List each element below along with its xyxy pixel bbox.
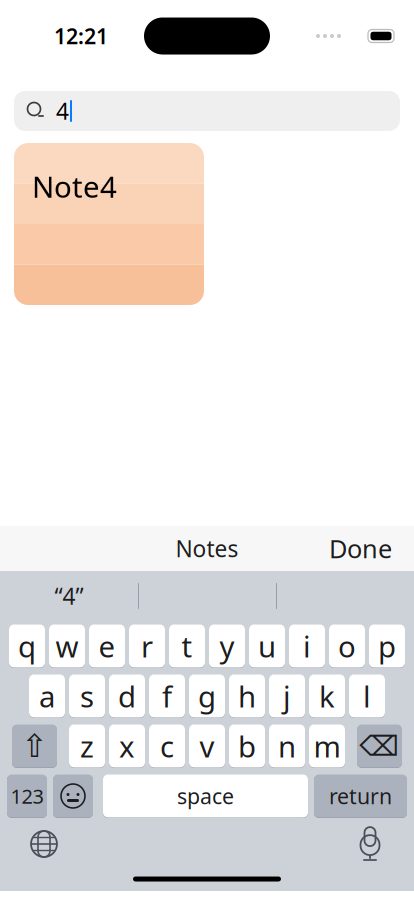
staticText: “4” — [54, 581, 83, 611]
button[interactable]: k — [309, 674, 345, 718]
staticText: q — [18, 626, 36, 665]
staticText: m — [313, 726, 340, 765]
staticText: space — [177, 782, 234, 810]
staticText: i — [303, 626, 311, 665]
button[interactable]: u — [249, 624, 285, 668]
staticText: p — [378, 626, 396, 665]
button[interactable]: w — [49, 624, 85, 668]
button[interactable]: Return — [314, 774, 407, 818]
button[interactable]: y — [209, 624, 245, 668]
staticText: l — [363, 676, 371, 715]
button[interactable]: a — [29, 674, 65, 718]
button[interactable]: g — [189, 674, 225, 718]
button[interactable]: Delete — [357, 724, 402, 768]
staticText: f — [162, 676, 172, 715]
button[interactable]: f — [149, 674, 185, 718]
button[interactable]: s — [69, 674, 105, 718]
button[interactable]: Done — [315, 524, 406, 573]
staticText: return — [329, 782, 392, 810]
staticText: e — [98, 626, 115, 665]
button[interactable]: p — [369, 624, 405, 668]
staticText: 4 — [56, 96, 69, 126]
staticText: j — [283, 676, 291, 715]
button[interactable]: Quote 4 — [0, 572, 138, 620]
staticText: n — [278, 726, 296, 765]
staticText: u — [258, 626, 276, 665]
button[interactable]: o — [329, 624, 365, 668]
button[interactable]: Next keyboard — [22, 822, 66, 866]
button[interactable]: q — [9, 624, 45, 668]
button[interactable]: z — [69, 724, 105, 768]
staticText: s — [80, 676, 94, 715]
staticText: Done — [329, 532, 392, 565]
staticText: a — [39, 676, 55, 715]
button[interactable]: r — [129, 624, 165, 668]
staticText: r — [141, 626, 153, 665]
staticText: h — [238, 676, 256, 715]
button[interactable]: Note4 — [14, 143, 204, 305]
staticText: b — [238, 726, 256, 765]
staticText: d — [118, 676, 136, 715]
staticText: Note4 — [32, 167, 117, 206]
button[interactable]: e — [89, 624, 125, 668]
staticText: k — [319, 676, 335, 715]
button[interactable]: Space — [103, 774, 308, 818]
button[interactable]: j — [269, 674, 305, 718]
button[interactable]: Dictate — [348, 822, 392, 866]
button[interactable]: m — [309, 724, 345, 768]
button[interactable]: c — [149, 724, 185, 768]
staticText: c — [160, 726, 174, 765]
button[interactable]: x — [109, 724, 145, 768]
button[interactable]: v — [189, 724, 225, 768]
staticText: 123 — [10, 783, 43, 809]
staticText: ⇧ — [21, 728, 48, 764]
button[interactable]: b — [229, 724, 265, 768]
staticText: t — [181, 626, 192, 665]
staticText: Notes — [175, 533, 238, 563]
button[interactable]: i — [289, 624, 325, 668]
staticText: y — [219, 626, 234, 665]
button[interactable]: d — [109, 674, 145, 718]
button[interactable]: h — [229, 674, 265, 718]
button[interactable]: Search — [14, 91, 400, 131]
staticText: w — [55, 626, 78, 665]
button[interactable]: t — [169, 624, 205, 668]
staticText: 12:21 — [54, 22, 108, 50]
staticText: ⌫ — [359, 730, 399, 762]
button[interactable]: n — [269, 724, 305, 768]
staticText: g — [198, 676, 216, 715]
button[interactable]: Shift — [12, 724, 57, 768]
button[interactable]: l — [349, 674, 385, 718]
staticText: x — [119, 726, 135, 765]
button[interactable]: Numbers — [7, 774, 47, 818]
button[interactable]: Emoji — [53, 774, 93, 818]
staticText: v — [199, 726, 214, 765]
staticText: o — [338, 626, 356, 665]
staticText: z — [80, 726, 94, 765]
